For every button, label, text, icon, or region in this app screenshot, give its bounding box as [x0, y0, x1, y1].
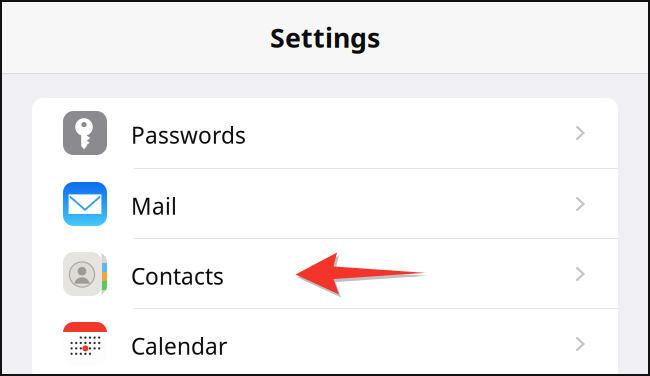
button[interactable]: Calendar: [32, 309, 618, 376]
staticText: Passwords: [131, 120, 246, 150]
staticText: Mail: [131, 191, 177, 221]
button[interactable]: Contacts: [32, 239, 618, 309]
button[interactable]: Passwords: [32, 98, 618, 169]
staticText: Contacts: [131, 261, 224, 291]
staticText: Settings: [270, 20, 380, 55]
staticText: Calendar: [131, 331, 227, 361]
button[interactable]: Mail: [32, 169, 618, 239]
